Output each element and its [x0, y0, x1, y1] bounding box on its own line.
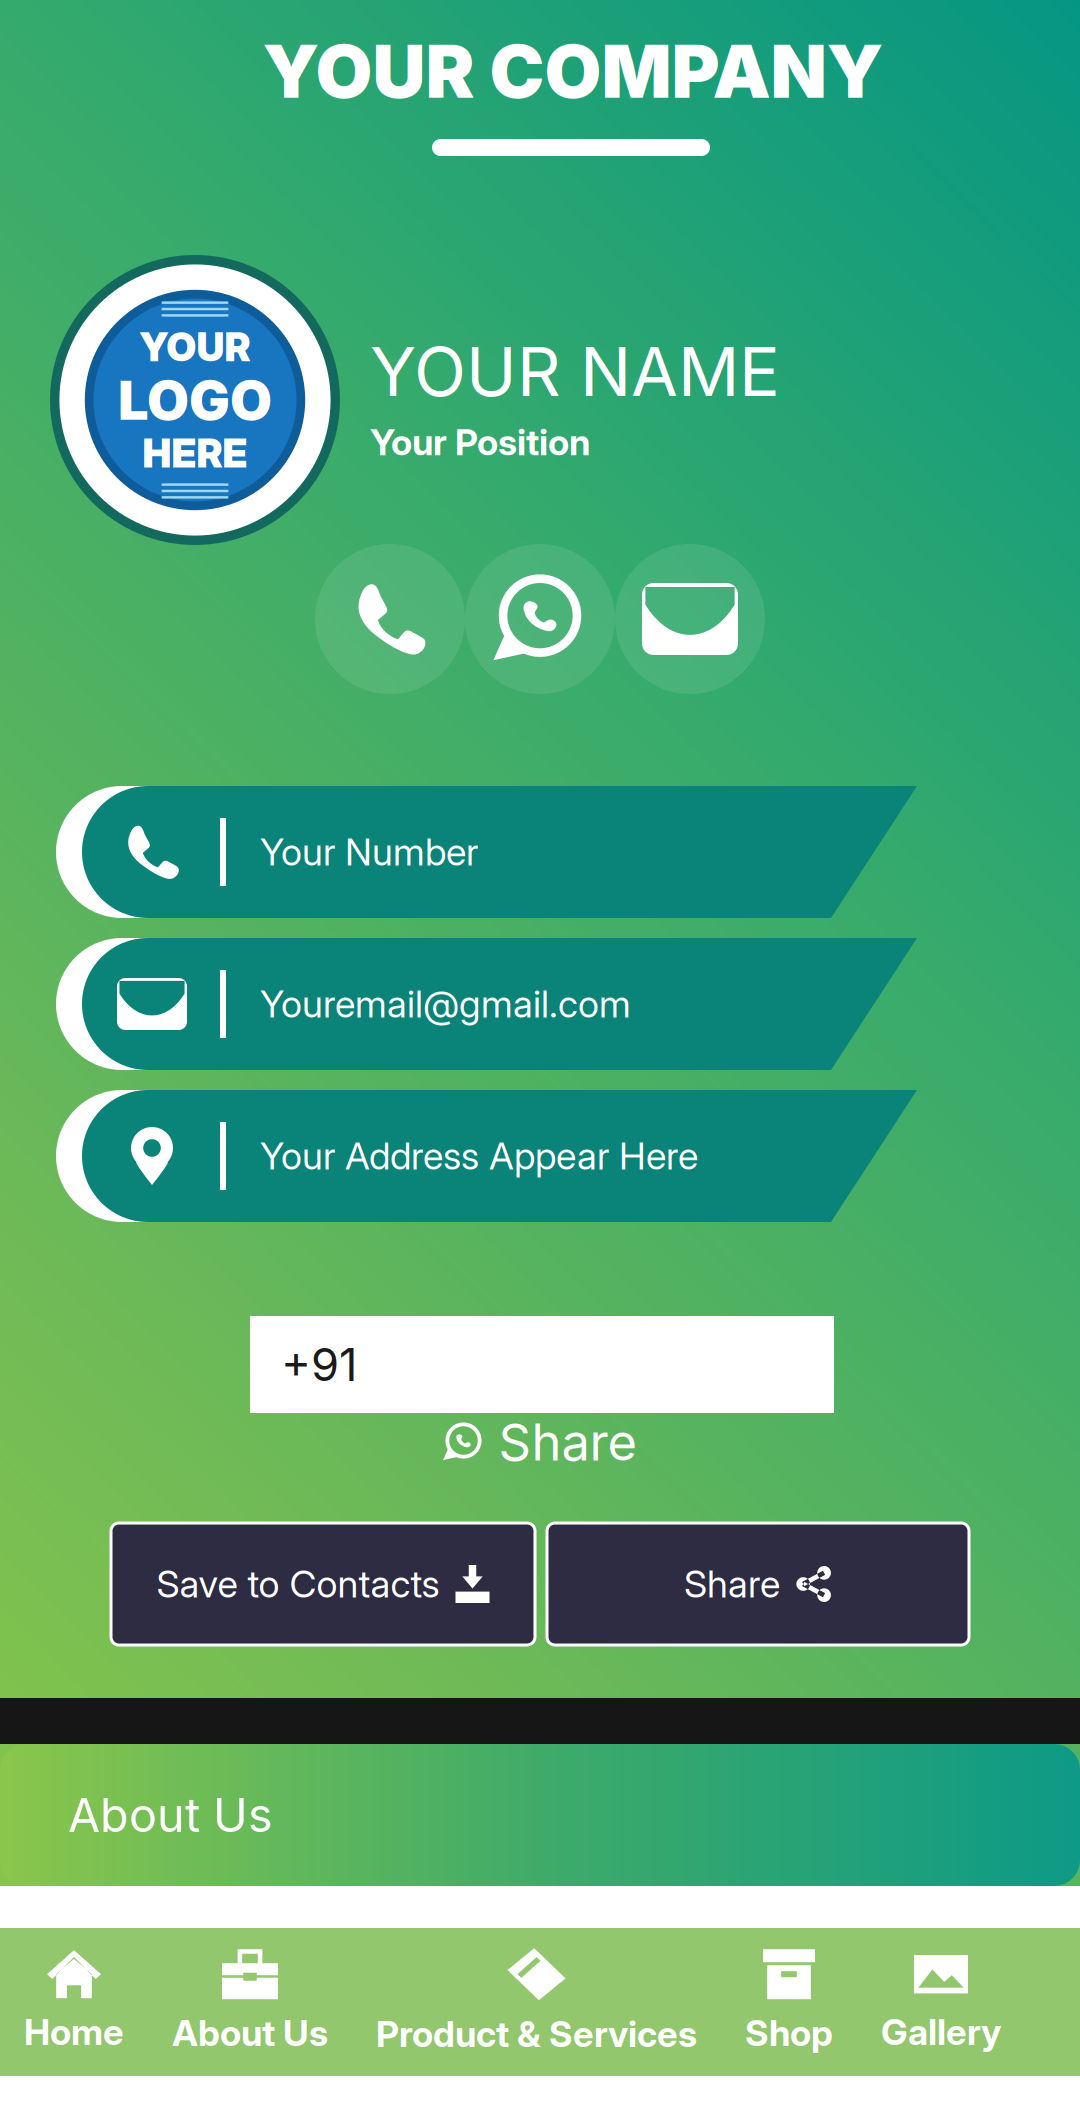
staticText: YOUR COMPANY	[262, 27, 883, 115]
staticText: LOGO	[118, 367, 272, 433]
button[interactable]: Call	[315, 544, 465, 694]
staticText: Product & Services	[376, 2012, 697, 2056]
button[interactable]: Shop	[721, 1928, 857, 2076]
button[interactable]: Share	[547, 1523, 969, 1645]
staticText: About Us	[172, 2011, 328, 2055]
staticText: Your Address Appear Here	[260, 1133, 698, 1179]
staticText: Share	[684, 1561, 780, 1607]
button[interactable]: Your Number	[82, 786, 943, 918]
button[interactable]: Your Address Appear Here	[82, 1090, 943, 1222]
button[interactable]: About Us	[148, 1928, 352, 2076]
staticText: Share	[498, 1411, 637, 1473]
staticText: About Us	[68, 1787, 273, 1843]
staticText: HERE	[142, 429, 247, 477]
staticText: +91	[281, 1337, 357, 1392]
staticText: Save to Contacts	[156, 1561, 439, 1607]
staticText: Your Number	[260, 829, 478, 875]
button[interactable]: Product & Services	[352, 1928, 721, 2076]
button[interactable]: WhatsApp	[465, 544, 615, 694]
staticText: Home	[24, 2010, 124, 2054]
button[interactable]: Home	[0, 1928, 148, 2076]
staticText: Youremail@gmail.com	[260, 981, 631, 1027]
button[interactable]: Share	[390, 1412, 690, 1472]
button[interactable]: Youremail@gmail.com	[82, 938, 943, 1070]
button[interactable]: Email	[615, 544, 765, 694]
staticText: Gallery	[881, 2010, 1001, 2054]
staticText: YOUR	[139, 323, 250, 371]
staticText: YOUR NAME	[370, 330, 780, 412]
staticText: Shop	[745, 2011, 833, 2055]
staticText: Your Position	[370, 420, 590, 464]
button[interactable]: Save to Contacts	[111, 1523, 535, 1645]
button[interactable]: Gallery	[857, 1928, 1025, 2076]
